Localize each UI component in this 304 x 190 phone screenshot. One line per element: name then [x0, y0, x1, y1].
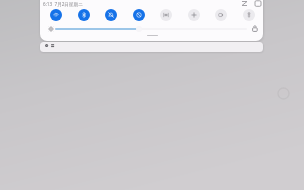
button[interactable]: Screen record: [215, 9, 227, 21]
button[interactable]: Notifications: [40, 42, 263, 52]
button[interactable]: Wi-Fi: [50, 9, 62, 21]
button[interactable]: Flashlight: [243, 9, 255, 21]
button[interactable]: Silent: [105, 9, 117, 21]
button[interactable]: Cast: [160, 9, 172, 21]
button[interactable]: Do not disturb: [133, 9, 145, 21]
staticText: 6:13 7月2日星期二: [43, 1, 83, 7]
button[interactable]: Brightness: [55, 28, 247, 30]
button[interactable]: Bluetooth: [78, 9, 90, 21]
button[interactable]: Add tile: [188, 9, 200, 21]
